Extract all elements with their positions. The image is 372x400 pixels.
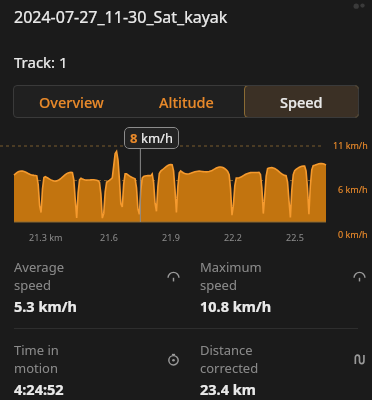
button[interactable]: Time in motion	[0, 341, 186, 399]
staticText: Maximum speed	[200, 258, 276, 294]
staticText: 11 km/h	[333, 139, 368, 151]
staticText: 0 km/h	[338, 228, 368, 240]
staticText: Average speed	[14, 258, 90, 294]
staticText: Overview	[39, 92, 104, 112]
staticText: Speed	[280, 92, 323, 112]
button[interactable]: Distance corrected	[186, 341, 372, 399]
staticText: 10.8 km/h	[200, 296, 272, 316]
other: Time	[167, 353, 180, 366]
staticText: 21.6	[100, 231, 118, 243]
staticText: 22.2	[224, 231, 242, 243]
staticText: 23.4 km	[200, 379, 256, 399]
other: Speed	[353, 270, 366, 283]
other: Distance	[353, 353, 366, 366]
staticText: 4:24:52	[14, 379, 64, 399]
other: Speed	[167, 270, 180, 283]
staticText: 2024-07-27_11-30_Sat_kayak	[14, 6, 228, 28]
staticText: Altitude	[159, 92, 214, 112]
button[interactable]: Average speed	[0, 258, 186, 316]
button[interactable]: Speed	[244, 85, 359, 118]
staticText: 8	[130, 129, 138, 147]
staticText: Track: 1	[14, 52, 68, 72]
button[interactable]: Overview	[13, 85, 129, 118]
staticText: 6 km/h	[338, 183, 368, 195]
staticText: 21.9	[162, 231, 180, 243]
button[interactable]: Maximum speed	[186, 258, 372, 316]
staticText: km/h	[141, 129, 173, 147]
button[interactable]: Altitude	[129, 85, 244, 118]
staticText: Distance corrected	[200, 341, 276, 377]
staticText: 21.3 km	[29, 231, 63, 243]
staticText: 22.5	[286, 231, 304, 243]
staticText: 5.3 km/h	[14, 296, 78, 316]
staticText: Time in motion	[14, 341, 90, 377]
